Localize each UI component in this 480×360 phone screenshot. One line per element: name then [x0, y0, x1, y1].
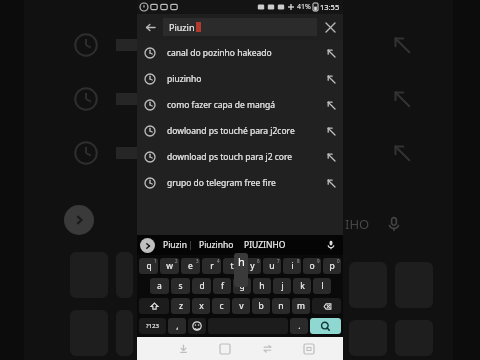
button[interactable]: Insert suggestion — [319, 145, 343, 169]
button[interactable]: Hide keyboard — [162, 337, 204, 360]
staticText: g — [239, 280, 245, 292]
button[interactable]: Backspace — [312, 298, 341, 314]
button[interactable]: v — [232, 298, 250, 314]
staticText: Piuzin — [169, 21, 195, 33]
button[interactable]: , — [168, 318, 186, 334]
button[interactable]: Emoji — [188, 318, 206, 334]
staticText: h — [259, 280, 265, 292]
staticText: i — [291, 260, 294, 272]
button[interactable]: k — [293, 278, 311, 294]
button[interactable]: o — [303, 258, 321, 274]
button[interactable]: Search — [310, 318, 341, 334]
button[interactable]: u — [263, 258, 281, 274]
button[interactable]: PIUZINHO — [242, 239, 288, 251]
staticText: 3 — [196, 258, 199, 264]
staticText: Piuzin — [163, 239, 188, 251]
staticText: 41% — [297, 2, 311, 12]
button[interactable]: q — [139, 258, 158, 274]
button[interactable]: como fazer capa de mangá — [137, 92, 343, 118]
staticText: Piuzinho — [199, 239, 234, 251]
button[interactable]: l — [313, 278, 331, 294]
button[interactable]: p — [323, 258, 341, 274]
button[interactable]: Piuzinho — [197, 239, 236, 251]
staticText: como fazer capa de mangá — [167, 99, 319, 111]
staticText: t — [230, 260, 234, 272]
staticText: ?123 — [146, 322, 159, 330]
staticText: b — [258, 300, 264, 312]
button[interactable]: Back — [137, 14, 163, 40]
staticText: piuzinho — [167, 73, 319, 85]
button[interactable]: r — [202, 258, 221, 274]
staticText: 1 — [154, 258, 157, 264]
button[interactable]: Recents — [246, 337, 288, 360]
button[interactable]: n — [272, 298, 290, 314]
staticText: y — [250, 260, 255, 272]
staticText: q — [146, 260, 152, 272]
button[interactable]: . — [290, 318, 308, 334]
button[interactable]: w — [160, 258, 179, 274]
staticText: d — [199, 280, 205, 292]
button[interactable]: e — [181, 258, 200, 274]
button[interactable]: m — [292, 298, 310, 314]
button[interactable]: grupo do telegram free fire — [137, 170, 343, 196]
staticText: j — [281, 280, 284, 292]
staticText: h — [238, 254, 245, 269]
staticText: 6 — [257, 258, 260, 264]
button[interactable]: Clear — [317, 14, 343, 40]
button[interactable]: Screenshot — [288, 337, 330, 360]
button[interactable]: s — [171, 278, 190, 294]
button[interactable]: Piuzin — [161, 239, 190, 251]
button[interactable]: Voice input — [322, 236, 340, 254]
staticText: r — [210, 260, 214, 272]
button[interactable]: y — [243, 258, 261, 274]
staticText: 13:55 — [320, 2, 340, 12]
button[interactable]: Home — [204, 337, 246, 360]
button[interactable]: d — [192, 278, 211, 294]
button[interactable]: dowloand ps touché para j2core — [137, 118, 343, 144]
staticText: 7 — [277, 258, 280, 264]
staticText: IHO — [345, 215, 370, 233]
staticText: dowloand ps touché para j2core — [167, 125, 319, 137]
staticText: , — [176, 320, 179, 332]
button[interactable]: Insert suggestion — [319, 67, 343, 91]
staticText: s — [178, 280, 183, 292]
staticText: k — [300, 280, 305, 292]
button[interactable]: piuzinho — [137, 66, 343, 92]
staticText: 5 — [237, 258, 240, 264]
button[interactable]: Insert suggestion — [319, 171, 343, 195]
button[interactable]: ?123 — [139, 318, 166, 334]
button[interactable]: b — [252, 298, 270, 314]
staticText: . — [298, 320, 301, 332]
staticText: 4 — [217, 258, 220, 264]
button[interactable]: Insert suggestion — [319, 119, 343, 143]
button[interactable]: g — [233, 278, 251, 294]
button[interactable]: c — [212, 298, 230, 314]
button[interactable]: download ps touch para j2 core — [137, 144, 343, 170]
button[interactable]: More suggestions — [140, 238, 155, 253]
button[interactable]: h — [253, 278, 271, 294]
button[interactable]: a — [150, 278, 169, 294]
staticText: w — [166, 260, 173, 272]
staticText: o — [309, 260, 315, 272]
button[interactable]: Piuzin — [169, 18, 317, 36]
staticText: z — [179, 300, 183, 312]
button[interactable]: i — [283, 258, 301, 274]
staticText: l — [321, 280, 324, 292]
staticText: c — [219, 300, 224, 312]
button[interactable]: canal do pozinho hakeado — [137, 40, 343, 66]
button[interactable]: x — [192, 298, 210, 314]
staticText: 8 — [297, 258, 300, 264]
button[interactable]: Insert suggestion — [319, 41, 343, 65]
button[interactable]: j — [273, 278, 291, 294]
staticText: f — [221, 280, 224, 292]
button[interactable]: z — [171, 298, 190, 314]
button[interactable]: f — [213, 278, 231, 294]
staticText: u — [269, 260, 275, 272]
staticText: a — [157, 280, 162, 292]
button[interactable]: t — [223, 258, 241, 274]
staticText: v — [239, 300, 244, 312]
button[interactable]: Shift — [139, 298, 169, 314]
staticText: grupo do telegram free fire — [167, 177, 319, 189]
button[interactable]: Insert suggestion — [319, 93, 343, 117]
